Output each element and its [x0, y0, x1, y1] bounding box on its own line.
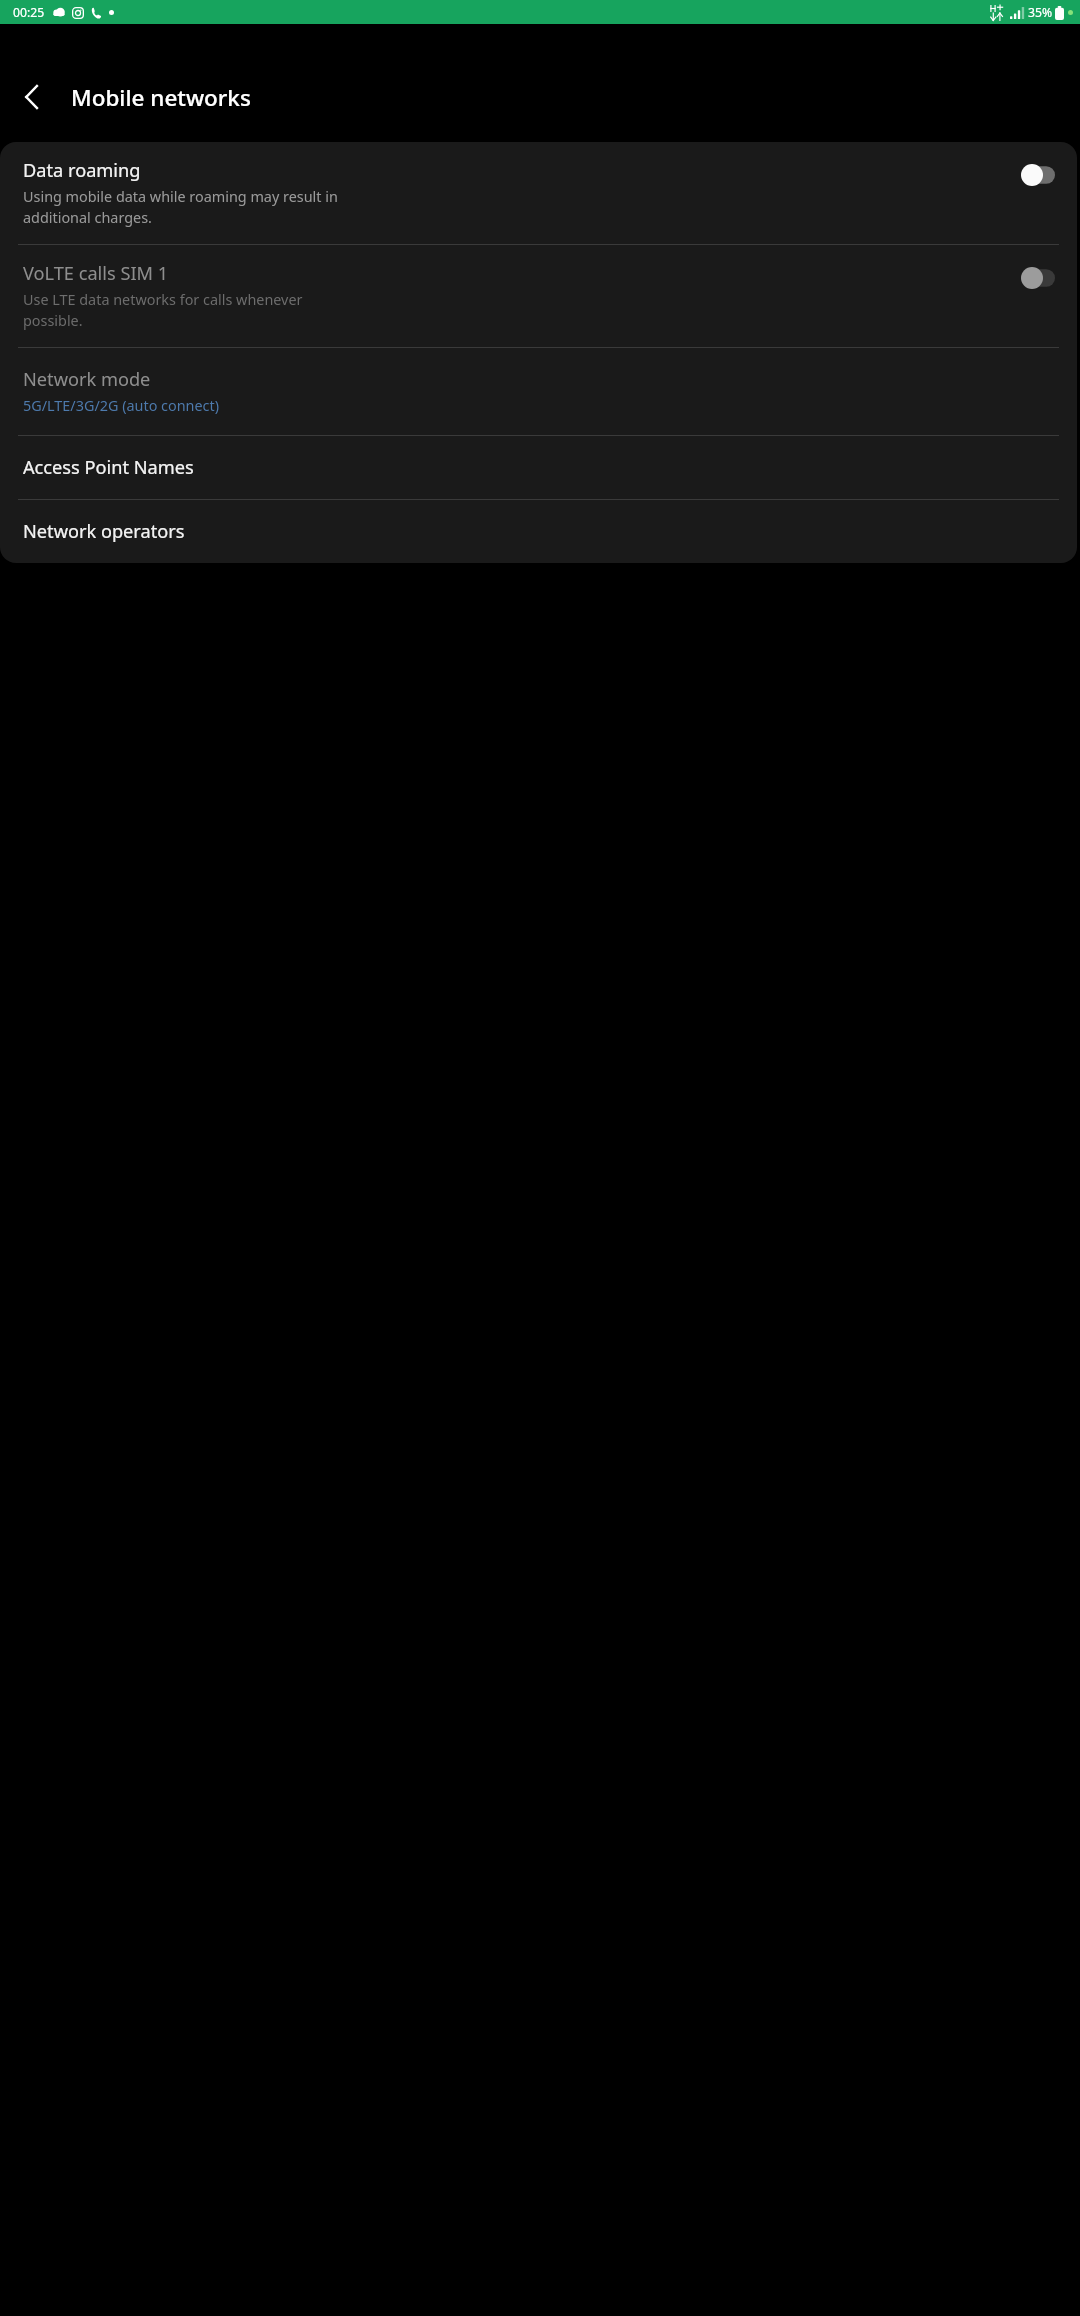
button[interactable]: Data roaming [1021, 164, 1055, 186]
button[interactable]: Data roaming [0, 142, 1077, 244]
staticText: Use LTE data networks for calls whenever… [23, 290, 303, 331]
button[interactable]: Network mode [0, 348, 1077, 435]
staticText: Mobile networks [71, 82, 251, 113]
staticText: Using mobile data while roaming may resu… [23, 187, 338, 228]
staticText: Network mode [23, 367, 151, 392]
button[interactable]: Access Point Names [0, 436, 1077, 499]
button[interactable]: VoLTE calls SIM 1 [1021, 267, 1055, 289]
staticText: Network operators [23, 519, 185, 544]
button[interactable]: Back [5, 71, 57, 123]
staticText: VoLTE calls SIM 1 [23, 261, 169, 286]
button[interactable]: VoLTE calls SIM 1 [0, 245, 1077, 347]
staticText: 35% [1028, 4, 1053, 21]
staticText: 00:25 [13, 4, 45, 21]
button[interactable]: Network operators [0, 500, 1077, 563]
staticText: 5G/LTE/3G/2G (auto connect) [23, 396, 220, 416]
staticText: Data roaming [23, 158, 141, 183]
staticText: Access Point Names [23, 455, 194, 480]
